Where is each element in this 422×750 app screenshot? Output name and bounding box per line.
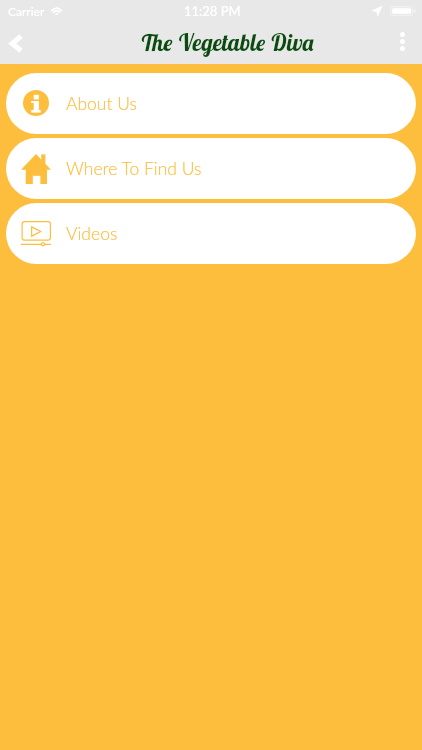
button[interactable]: More options (383, 22, 422, 64)
staticText: Videos (66, 223, 118, 244)
button[interactable]: Where To Find Us (6, 138, 416, 199)
button[interactable]: Videos (6, 203, 416, 264)
staticText: About Us (66, 93, 137, 114)
staticText: The Vegetable Diva (140, 28, 315, 57)
staticText: Carrier (8, 4, 45, 18)
staticText: 11:28 PM (184, 3, 241, 19)
button[interactable]: About Us (6, 73, 416, 134)
button[interactable]: Back (0, 22, 31, 64)
staticText: Where To Find Us (66, 158, 202, 179)
